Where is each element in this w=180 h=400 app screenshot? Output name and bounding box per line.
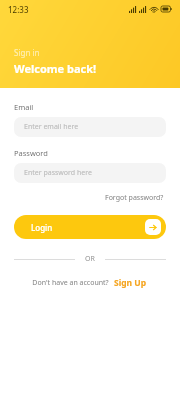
staticText: Password bbox=[14, 148, 48, 158]
staticText: Email bbox=[14, 102, 34, 112]
button[interactable]: Login bbox=[14, 215, 166, 239]
staticText: 12:33 bbox=[8, 4, 29, 15]
staticText: Enter password here bbox=[24, 168, 92, 178]
staticText: Sign Up bbox=[114, 277, 147, 289]
button[interactable]: Forgot password? bbox=[103, 191, 166, 205]
staticText: Login bbox=[31, 222, 53, 233]
button[interactable]: Enter email here bbox=[14, 117, 166, 137]
staticText: Forgot password? bbox=[105, 193, 164, 203]
staticText: Sign in bbox=[14, 47, 40, 58]
staticText: Welcome back! bbox=[14, 61, 97, 76]
button[interactable]: Enter password here bbox=[14, 163, 166, 183]
staticText: Don't have an account? bbox=[32, 278, 109, 288]
staticText: Enter email here bbox=[24, 122, 79, 132]
staticText: OR bbox=[85, 254, 95, 264]
button[interactable]: Sign Up bbox=[113, 276, 148, 290]
